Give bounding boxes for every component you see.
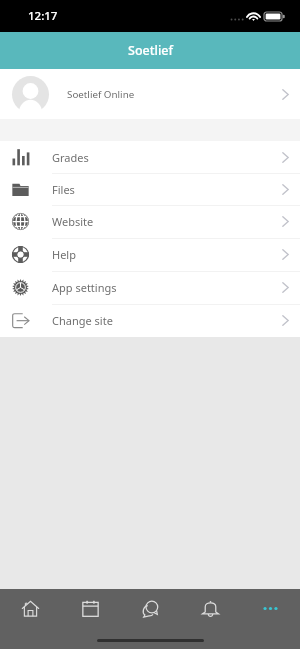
button[interactable]: More [240,589,300,627]
button[interactable]: Help [0,238,300,271]
staticText: Soetlief Online [67,88,135,101]
button[interactable]: Soetlief Online [0,69,300,119]
button[interactable]: Home [0,589,60,627]
button[interactable]: Change site [0,304,300,337]
staticText: Files [52,182,75,197]
staticText: App settings [52,280,117,295]
button[interactable]: Website [0,205,300,238]
staticText: Soetlief [128,42,173,59]
staticText: 12:17 [28,8,58,24]
staticText: Change site [52,313,113,328]
staticText: Website [52,214,94,229]
button[interactable]: App settings [0,271,300,304]
button[interactable]: Messages [120,589,180,627]
button[interactable]: Calendar [60,589,120,627]
staticText: Grades [52,150,89,165]
button[interactable]: Notifications [180,589,240,627]
button[interactable]: Grades [0,141,300,173]
staticText: Help [52,247,76,262]
button[interactable]: Files [0,173,300,205]
